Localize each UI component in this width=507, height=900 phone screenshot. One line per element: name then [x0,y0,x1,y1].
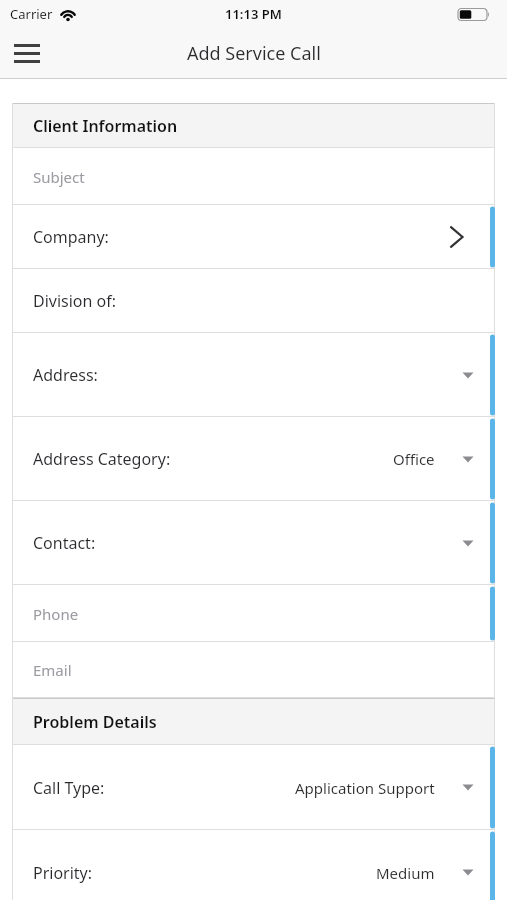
button[interactable]: Email [12,642,495,698]
staticText: Address Category: [33,448,171,470]
staticText: Problem Details [33,711,157,733]
button[interactable]: Contact: [12,501,495,585]
staticText: Office [393,449,435,469]
button[interactable]: Phone [12,585,495,642]
staticText: Address: [33,364,98,386]
staticText: Subject [33,167,85,187]
button[interactable]: Address: [12,333,495,417]
staticText: Phone [33,604,79,624]
staticText: Medium [376,863,435,883]
button[interactable]: Division of: [12,269,495,333]
button[interactable] [8,34,46,72]
staticText: Call Type: [33,777,105,799]
staticText: Company: [33,226,109,248]
button[interactable]: Priority: [12,830,495,900]
staticText: Priority: [33,862,93,884]
staticText: Client Information [33,115,178,137]
staticText: Application Support [295,778,435,798]
staticText: 11:13 PM [225,5,282,23]
staticText: Contact: [33,532,96,554]
staticText: Division of: [33,290,117,312]
button[interactable]: Address Category: [12,417,495,501]
button[interactable]: Call Type: [12,745,495,830]
staticText: Email [33,660,72,680]
staticText: Carrier [10,5,53,23]
button[interactable]: Subject [12,148,495,205]
button[interactable]: Company: [12,205,495,269]
staticText: Add Service Call [187,41,321,66]
